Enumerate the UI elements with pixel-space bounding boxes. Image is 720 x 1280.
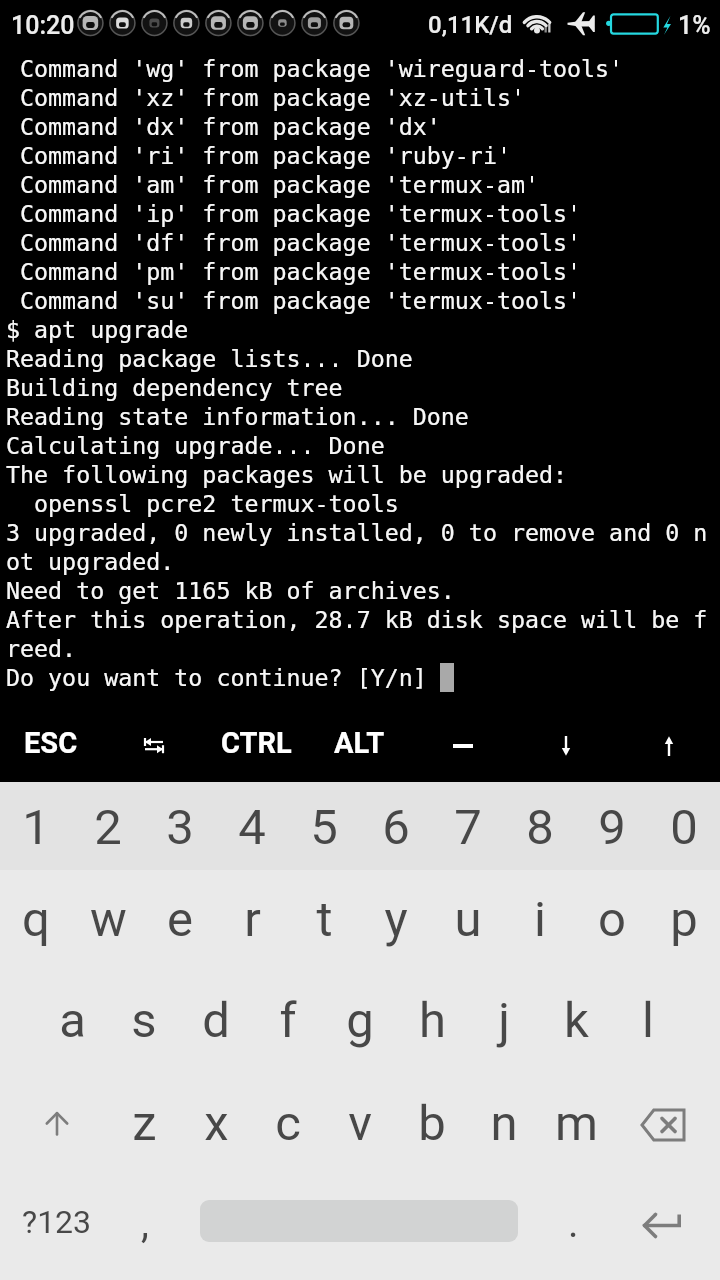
button[interactable]: m: [540, 1074, 612, 1176]
button[interactable]: 0: [648, 782, 720, 870]
staticText: z: [132, 1095, 157, 1152]
button[interactable]: r: [216, 870, 288, 972]
button[interactable]: .: [540, 1176, 606, 1280]
button[interactable]: 2: [72, 782, 144, 870]
staticText: Command 'am' from package 'termux-am': [6, 171, 539, 198]
button[interactable]: ?123: [0, 1176, 113, 1280]
staticText: Calculating upgrade... Done: [6, 432, 385, 459]
button[interactable]: 5: [288, 782, 360, 870]
button[interactable]: 6: [360, 782, 432, 870]
staticText: f: [279, 992, 297, 1049]
staticText: Command 'wg' from package 'wireguard-too…: [6, 55, 624, 82]
button[interactable]: d: [180, 972, 252, 1074]
button[interactable]: Arrow down: [514, 700, 617, 782]
staticText: 0,11K/d: [428, 11, 513, 39]
staticText: CTRL: [221, 726, 292, 760]
button[interactable]: ALT: [308, 700, 411, 782]
button[interactable]: o: [576, 870, 648, 972]
button[interactable]: u: [432, 870, 504, 972]
staticText: Command 'ri' from package 'ruby-ri': [6, 142, 511, 169]
staticText: n: [490, 1095, 518, 1152]
button[interactable]: e: [144, 870, 216, 972]
button[interactable]: z: [108, 1074, 180, 1176]
staticText: y: [384, 891, 408, 948]
staticText: ,: [141, 1200, 149, 1247]
button[interactable]: 3: [144, 782, 216, 870]
button[interactable]: 4: [216, 782, 288, 870]
button[interactable]: 9: [576, 782, 648, 870]
button[interactable]: s: [108, 972, 180, 1074]
button[interactable]: Arrow up: [617, 700, 720, 782]
staticText: The following packages will be upgraded:: [6, 461, 568, 488]
button[interactable]: CTRL: [205, 700, 308, 782]
button[interactable]: a: [36, 972, 108, 1074]
staticText: ?123: [22, 1203, 92, 1241]
button[interactable]: c: [252, 1074, 324, 1176]
button[interactable]: k: [540, 972, 612, 1074]
button[interactable]: i: [504, 870, 576, 972]
staticText: h: [419, 992, 446, 1049]
button[interactable]: p: [648, 870, 720, 972]
staticText: Command 'pm' from package 'termux-tools': [6, 258, 582, 285]
button[interactable]: n: [468, 1074, 540, 1176]
staticText: ESC: [24, 726, 78, 760]
staticText: Command 'ip' from package 'termux-tools': [6, 200, 582, 227]
staticText: Reading package lists... Done: [6, 345, 413, 372]
staticText: w: [90, 891, 127, 948]
staticText: Command 'xz' from package 'xz-utils': [6, 84, 525, 111]
staticText: p: [670, 891, 698, 948]
staticText: d: [202, 992, 230, 1049]
staticText: a: [59, 992, 86, 1049]
button[interactable]: t: [288, 870, 360, 972]
staticText: o: [598, 891, 626, 948]
button[interactable]: y: [360, 870, 432, 972]
staticText: e: [167, 891, 193, 948]
button[interactable]: b: [396, 1074, 468, 1176]
button[interactable]: Backspace: [612, 1074, 720, 1176]
button[interactable]: Enter: [611, 1176, 711, 1280]
button[interactable]: 1: [0, 782, 72, 870]
staticText: 7: [454, 799, 482, 856]
staticText: reed.: [6, 635, 77, 662]
staticText: q: [22, 891, 50, 948]
button[interactable]: g: [324, 972, 396, 1074]
staticText: s: [131, 992, 157, 1049]
staticText: Need to get 1165 kB of archives.: [6, 577, 455, 604]
staticText: $ apt upgrade: [6, 316, 189, 343]
staticText: 3 upgraded, 0 newly installed, 0 to remo…: [6, 519, 708, 546]
staticText: m: [555, 1095, 598, 1152]
button[interactable]: 8: [504, 782, 576, 870]
button[interactable]: w: [72, 870, 144, 972]
staticText: l: [642, 992, 654, 1049]
button[interactable]: ,: [113, 1176, 177, 1280]
button[interactable]: x: [180, 1074, 252, 1176]
button[interactable]: l: [612, 972, 684, 1074]
staticText: ALT: [334, 726, 385, 760]
button[interactable]: ESC: [0, 700, 102, 782]
staticText: t: [316, 891, 333, 948]
button[interactable]: q: [0, 870, 72, 972]
staticText: r: [244, 891, 261, 948]
button[interactable]: j: [468, 972, 540, 1074]
button[interactable]: Minus: [411, 700, 514, 782]
staticText: Command 'dx' from package 'dx': [6, 113, 441, 140]
staticText: b: [418, 1095, 446, 1152]
button[interactable]: h: [396, 972, 468, 1074]
button[interactable]: v: [324, 1074, 396, 1176]
staticText: g: [346, 992, 374, 1049]
staticText: 8: [526, 799, 554, 856]
button[interactable]: 7: [432, 782, 504, 870]
staticText: c: [275, 1095, 301, 1152]
staticText: u: [454, 891, 482, 948]
staticText: 1: [22, 799, 50, 856]
staticText: 2: [94, 799, 122, 856]
button[interactable]: f: [252, 972, 324, 1074]
button[interactable]: Tab: [102, 700, 205, 782]
staticText: x: [204, 1095, 229, 1152]
staticText: 3: [166, 799, 194, 856]
staticText: ot upgraded.: [6, 548, 175, 575]
staticText: 10:20: [11, 11, 75, 40]
button[interactable]: Shift: [0, 1074, 108, 1176]
staticText: 1%: [678, 11, 711, 40]
